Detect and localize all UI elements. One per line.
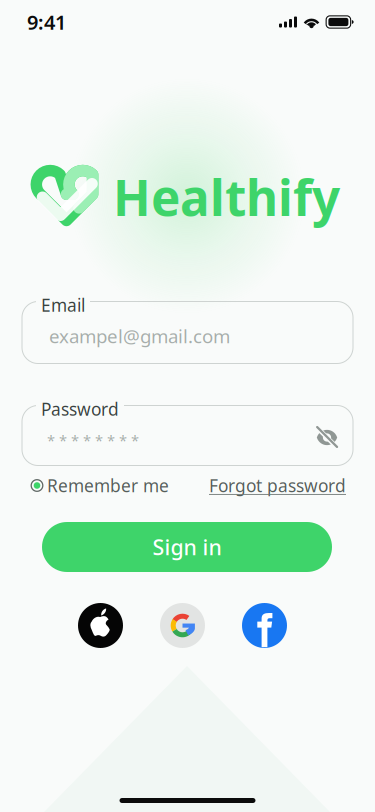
staticText: Healthify [113,164,340,229]
button[interactable]: Show password [316,426,338,448]
staticText: Forgot password [209,474,346,497]
button[interactable]: Sign in with Apple [78,603,123,648]
staticText: Password [41,397,119,420]
button[interactable]: Remember me [31,469,169,502]
button[interactable]: Sign in with Google [160,603,205,648]
staticText: Sign in [152,533,221,561]
staticText: 9:41 [27,9,66,35]
staticText: * * * * * * * * [47,430,139,450]
staticText: Remember me [47,474,169,497]
staticText: Email [41,293,85,316]
button[interactable]: Sign in [42,522,332,572]
staticText: exampel@gmail.com [49,323,230,348]
button[interactable]: Forgot password [209,469,346,502]
button[interactable]: Sign in with Facebook [242,603,287,648]
